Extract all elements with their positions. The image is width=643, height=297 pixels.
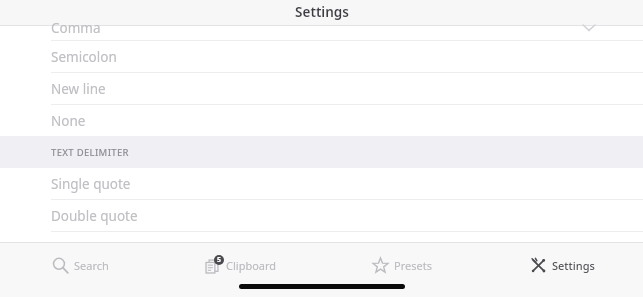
staticText: Settings bbox=[552, 258, 595, 273]
button[interactable]: None bbox=[0, 232, 643, 263]
button[interactable]: Double quote bbox=[0, 200, 643, 231]
other: Search bbox=[52, 257, 69, 274]
staticText: Search bbox=[74, 258, 109, 273]
staticText: Double quote bbox=[51, 207, 138, 225]
staticText: 5 bbox=[217, 255, 222, 265]
staticText: Comma bbox=[51, 19, 101, 33]
button[interactable]: Clipboard bbox=[160, 243, 321, 287]
button[interactable]: Comma bbox=[0, 26, 643, 40]
button[interactable]: Search bbox=[0, 243, 160, 287]
staticText: Presets bbox=[394, 258, 432, 273]
staticText: None bbox=[51, 239, 86, 257]
staticText: TEXT DELIMITER bbox=[51, 146, 129, 159]
other: Clipboard bbox=[204, 257, 221, 274]
staticText: Clipboard bbox=[226, 258, 277, 273]
other: Settings bbox=[530, 257, 547, 274]
button[interactable]: Presets bbox=[321, 243, 482, 287]
button[interactable]: Settings bbox=[482, 243, 643, 287]
staticText: Single quote bbox=[51, 175, 131, 193]
button[interactable]: New line bbox=[0, 73, 643, 104]
staticText: New line bbox=[51, 80, 106, 98]
button[interactable]: Semicolon bbox=[0, 41, 643, 72]
other: Presets bbox=[372, 257, 389, 274]
button[interactable]: Single quote bbox=[0, 168, 643, 199]
button[interactable]: None bbox=[0, 105, 643, 136]
staticText: Settings bbox=[295, 3, 349, 21]
staticText: Semicolon bbox=[51, 48, 117, 66]
staticText: None bbox=[51, 112, 86, 130]
